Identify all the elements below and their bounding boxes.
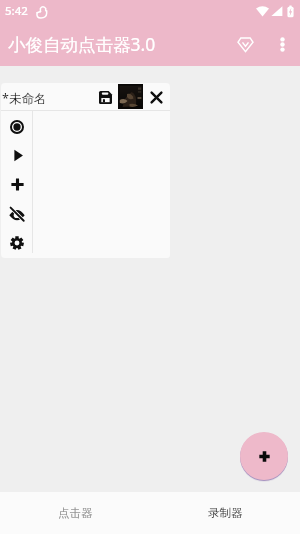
staticText: 点击器	[58, 506, 93, 520]
button[interactable]: 录制器	[150, 492, 300, 534]
button[interactable]: Premium	[222, 22, 264, 66]
button[interactable]: Settings	[2, 228, 32, 257]
staticText: 5:42	[5, 3, 28, 19]
button[interactable]: Play	[2, 141, 32, 170]
button[interactable]: Add	[240, 432, 288, 480]
button[interactable]: More options	[264, 22, 300, 66]
button[interactable]: Preview screenshot	[118, 84, 143, 109]
staticText: 小俊自动点击器3.0	[8, 32, 156, 56]
button[interactable]: Close	[147, 86, 165, 108]
staticText: 录制器	[208, 506, 243, 520]
button[interactable]: Hide overlay	[2, 199, 32, 228]
button[interactable]: Add action	[2, 170, 32, 199]
staticText: *未命名	[2, 90, 47, 107]
button[interactable]: Save	[96, 86, 114, 108]
button[interactable]: 点击器	[0, 492, 150, 534]
button[interactable]: Record	[2, 112, 32, 141]
